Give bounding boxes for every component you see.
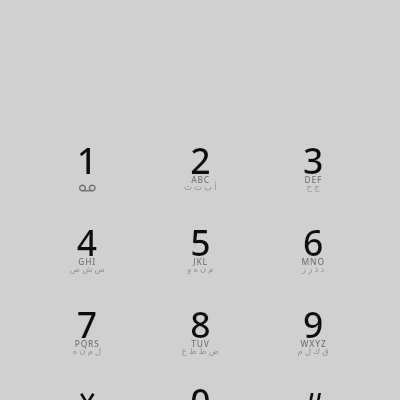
button[interactable]: Key 6 (273, 223, 355, 295)
button[interactable]: Key 3 (273, 140, 355, 212)
button[interactable]: Key 1 (46, 140, 128, 212)
button[interactable]: Key # (273, 382, 355, 400)
button[interactable]: Key 9 (273, 305, 355, 377)
button[interactable]: Key 0 (160, 382, 242, 400)
button[interactable]: Key * (46, 382, 128, 400)
button[interactable]: Key 4 (46, 223, 128, 295)
button[interactable]: Key 5 (160, 223, 242, 295)
button[interactable]: Key 8 (160, 305, 242, 377)
button[interactable]: Key 2 (160, 140, 242, 212)
button[interactable]: Key 7 (46, 305, 128, 377)
